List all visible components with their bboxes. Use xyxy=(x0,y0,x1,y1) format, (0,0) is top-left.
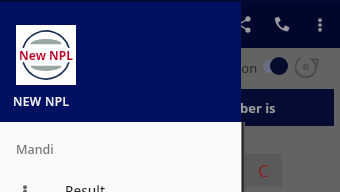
staticText: New NPL xyxy=(19,47,73,63)
staticText: Result xyxy=(65,182,106,192)
button[interactable]: Result xyxy=(0,182,241,192)
staticText: Mandi xyxy=(16,141,54,158)
staticText: C xyxy=(258,159,269,182)
button[interactable]: Refresh xyxy=(293,52,321,80)
button[interactable]: Call xyxy=(266,8,298,40)
staticText: Today lucky number is xyxy=(131,99,276,117)
button[interactable]: More options xyxy=(304,9,336,41)
staticText: NEW NPL xyxy=(13,93,70,109)
staticText: Auto refresh on xyxy=(162,59,258,77)
button[interactable]: C xyxy=(245,154,282,187)
button[interactable]: Share xyxy=(227,8,259,40)
button[interactable]: Auto refresh toggle xyxy=(261,57,289,75)
